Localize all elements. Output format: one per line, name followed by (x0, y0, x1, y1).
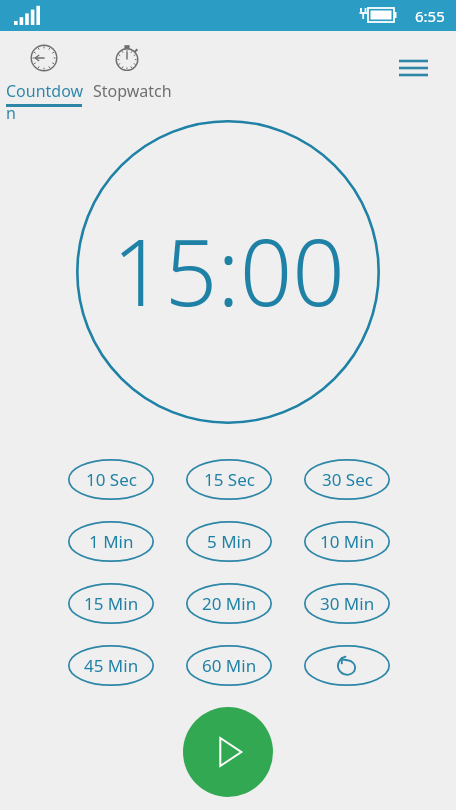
staticText: 30 Min (320, 592, 375, 615)
button[interactable]: 30 Sec (304, 459, 390, 500)
staticText: 1 Min (89, 530, 134, 553)
button[interactable]: Stopwatch (89, 40, 171, 110)
button[interactable]: Menu (390, 46, 440, 90)
staticText: 45 Min (84, 654, 139, 677)
button[interactable]: 15 Sec (186, 459, 272, 500)
button[interactable]: 60 Min (186, 645, 272, 686)
staticText: 15 Min (84, 592, 139, 615)
staticText: Countdown (6, 80, 86, 124)
staticText: 6:55 (415, 6, 445, 26)
staticText: 15 Sec (204, 468, 255, 491)
button[interactable]: 10 Sec (68, 459, 154, 500)
staticText: 5 Min (207, 530, 252, 553)
button[interactable]: 15:00 (76, 120, 380, 424)
staticText: 30 Sec (322, 468, 373, 491)
staticText: 10 Min (320, 530, 375, 553)
staticText: 20 Min (202, 592, 257, 615)
staticText: 60 Min (202, 654, 257, 677)
button[interactable]: 20 Min (186, 583, 272, 624)
button[interactable]: Countdown (4, 40, 84, 110)
staticText: 10 Sec (86, 468, 137, 491)
button[interactable]: 1 Min (68, 521, 154, 562)
staticText: Stopwatch (93, 80, 172, 102)
button[interactable]: Reset (304, 645, 390, 686)
button[interactable]: Start (183, 707, 273, 797)
button[interactable]: 45 Min (68, 645, 154, 686)
button[interactable]: 10 Min (304, 521, 390, 562)
staticText: 15:00 (112, 208, 345, 333)
button[interactable]: 15 Min (68, 583, 154, 624)
button[interactable]: 30 Min (304, 583, 390, 624)
button[interactable]: 5 Min (186, 521, 272, 562)
